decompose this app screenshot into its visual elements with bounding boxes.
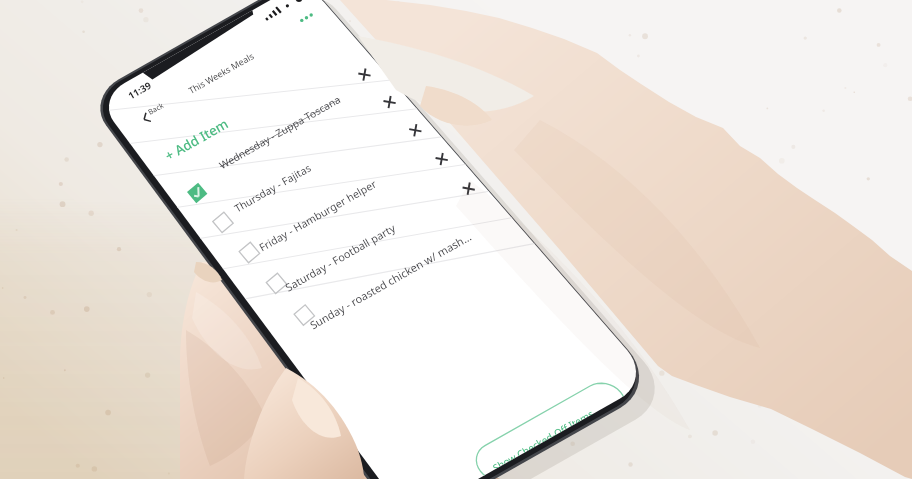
- button[interactable]: [0, 0, 912, 479]
